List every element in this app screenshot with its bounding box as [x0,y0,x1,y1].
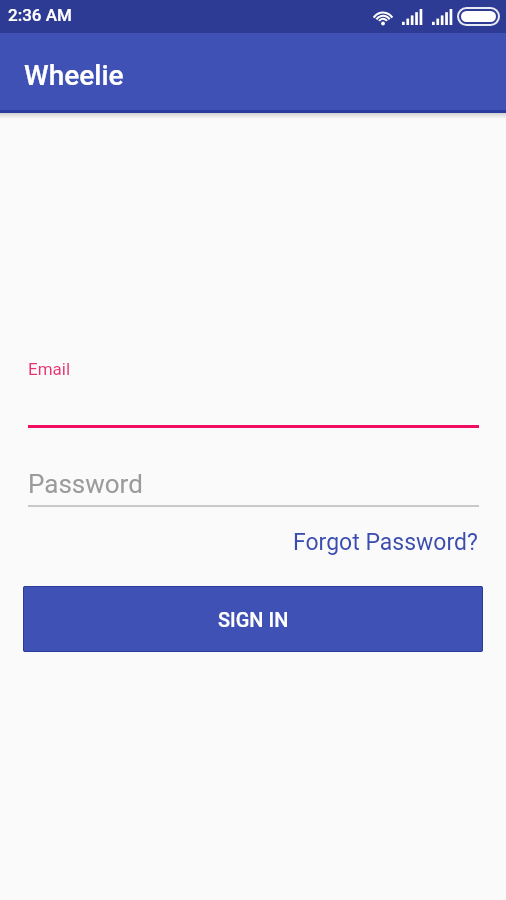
button[interactable]: Password [28,463,479,507]
staticText: 2:36 AM [8,5,72,25]
staticText: Email [28,359,71,379]
staticText: Wheelie [24,59,124,92]
button[interactable]: Forgot Password? [293,529,478,556]
staticText: Password [28,469,143,499]
staticText: SIGN IN [218,608,289,631]
button[interactable] [28,384,479,428]
button[interactable]: SIGN IN [23,586,483,652]
